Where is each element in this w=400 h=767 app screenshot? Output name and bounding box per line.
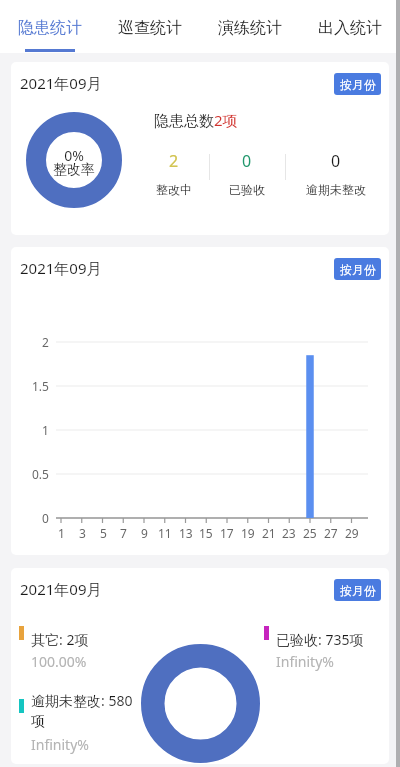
staticText: 按月份	[340, 583, 376, 598]
button[interactable]: 演练统计	[200, 0, 300, 53]
staticText: 1.5	[32, 378, 49, 394]
staticText: 11	[158, 525, 172, 541]
staticText: 0	[242, 150, 252, 172]
staticText: 已验收: 735项	[276, 630, 364, 649]
button[interactable]: 出入统计	[300, 0, 400, 53]
staticText: 2	[169, 150, 179, 172]
button[interactable]: 其它: 2项	[19, 630, 139, 676]
staticText: 13	[179, 525, 193, 541]
staticText: 隐患总数2项	[154, 110, 238, 130]
staticText: 19	[241, 525, 255, 541]
staticText: 100.00%	[31, 652, 87, 671]
button[interactable]: 按月份	[334, 579, 381, 601]
button[interactable]: 逾期未整改: 580	[19, 691, 139, 759]
staticText: 27	[324, 525, 338, 541]
button[interactable]: 已验收: 735项	[264, 630, 389, 676]
button[interactable]: 2	[124, 150, 224, 196]
staticText: 1	[42, 422, 49, 438]
button[interactable]: 按月份	[334, 73, 381, 95]
staticText: 逾期未整改: 580	[31, 691, 133, 710]
staticText: 3	[79, 525, 86, 541]
staticText: 9	[141, 525, 148, 541]
staticText: 出入统计	[318, 18, 382, 38]
staticText: Infinity%	[31, 735, 89, 754]
staticText: 隐患统计	[18, 18, 82, 38]
staticText: 15	[199, 525, 213, 541]
staticText: 7	[120, 525, 127, 541]
staticText: 逾期未整改	[306, 182, 366, 197]
staticText: 按月份	[340, 77, 376, 92]
staticText: 17	[220, 525, 234, 541]
staticText: 项	[31, 713, 45, 731]
other: 整改率 0%	[26, 112, 122, 208]
button[interactable]: 0	[197, 150, 297, 196]
staticText: 0	[331, 150, 341, 172]
staticText: Infinity%	[276, 652, 334, 671]
button[interactable]: 0	[286, 150, 386, 196]
button[interactable]: 2021年09月	[11, 62, 389, 235]
staticText: 整改中	[156, 182, 192, 197]
staticText: 25	[303, 525, 317, 541]
staticText: 2021年09月	[20, 258, 102, 278]
button[interactable]: 2021年09月	[11, 247, 389, 555]
staticText: 21	[262, 525, 276, 541]
button[interactable]: 巡查统计	[100, 0, 200, 53]
staticText: 29	[345, 525, 359, 541]
other: 隐患分布饼图	[141, 644, 260, 763]
staticText: 2	[42, 334, 49, 350]
button[interactable]: 隐患统计	[0, 0, 100, 53]
staticText: 2021年09月	[20, 579, 102, 599]
staticText: 0% 整改率	[53, 146, 95, 179]
staticText: 5	[100, 525, 107, 541]
staticText: 演练统计	[218, 18, 282, 38]
staticText: 按月份	[340, 262, 376, 277]
staticText: 0.5	[32, 466, 49, 482]
staticText: 0	[42, 510, 49, 526]
button[interactable]: 2021年09月	[11, 568, 389, 764]
staticText: 其它: 2项	[31, 630, 89, 649]
staticText: 2021年09月	[20, 73, 102, 93]
staticText: 1	[58, 525, 65, 541]
button[interactable]: 按月份	[334, 258, 381, 280]
staticText: 23	[282, 525, 296, 541]
staticText: 巡查统计	[118, 18, 182, 38]
staticText: 已验收	[229, 182, 265, 197]
